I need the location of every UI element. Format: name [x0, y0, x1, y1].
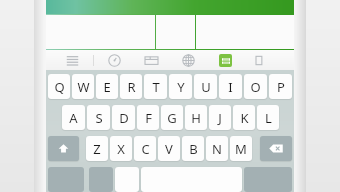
button[interactable]: X	[110, 136, 132, 161]
staticText: O	[250, 78, 261, 96]
button[interactable]: J	[209, 105, 231, 130]
staticText: R	[127, 78, 136, 96]
button[interactable]: Clipboard	[133, 50, 170, 70]
staticText: I	[228, 78, 233, 96]
staticText: S	[95, 109, 103, 127]
staticText: Z	[93, 140, 101, 158]
button[interactable]: S	[87, 105, 110, 130]
staticText: K	[240, 109, 249, 127]
staticText: M	[235, 140, 247, 158]
button[interactable]: Language	[170, 50, 207, 70]
button[interactable]: F	[137, 105, 159, 130]
button[interactable]: K	[233, 105, 255, 130]
button[interactable]: L	[257, 105, 279, 130]
button[interactable]: Keyboard	[207, 50, 244, 70]
button[interactable]: D	[112, 105, 135, 130]
button[interactable]: Z	[86, 136, 108, 161]
staticText: Y	[177, 78, 185, 96]
staticText: L	[265, 109, 272, 127]
staticText: Q	[54, 78, 65, 96]
button[interactable]: Shift	[48, 136, 79, 161]
button[interactable]: V	[158, 136, 180, 161]
staticText: C	[141, 140, 150, 158]
staticText: G	[167, 109, 177, 127]
button[interactable]: O	[244, 74, 267, 99]
staticText: N	[212, 140, 222, 158]
staticText: H	[191, 109, 201, 127]
button[interactable]: A	[62, 105, 85, 130]
button[interactable]: I	[219, 74, 242, 99]
staticText: J	[218, 109, 222, 127]
button[interactable]: Y	[169, 74, 192, 99]
staticText: F	[145, 109, 152, 127]
staticText: U	[201, 78, 211, 96]
staticText: E	[103, 78, 111, 96]
button[interactable]: C	[134, 136, 156, 161]
button[interactable]: Menu	[54, 50, 91, 70]
staticText: A	[69, 109, 78, 127]
button[interactable]: T	[144, 74, 167, 99]
button[interactable]: Q	[48, 74, 70, 99]
button[interactable]: M	[230, 136, 252, 161]
button[interactable]: G	[161, 105, 183, 130]
button[interactable]: W	[72, 74, 94, 99]
button[interactable]: P	[269, 74, 292, 99]
button[interactable]: N	[206, 136, 228, 161]
button[interactable]: More	[244, 50, 281, 70]
button[interactable]: U	[194, 74, 217, 99]
staticText: P	[277, 78, 285, 96]
staticText: W	[77, 78, 90, 96]
button[interactable]: Recent	[96, 50, 133, 70]
staticText: B	[189, 140, 198, 158]
button[interactable]: H	[185, 105, 207, 130]
button[interactable]: R	[120, 74, 142, 99]
staticText: T	[152, 78, 160, 96]
staticText: V	[165, 140, 173, 158]
staticText: D	[119, 109, 129, 127]
button[interactable]: Backspace	[260, 136, 292, 161]
button[interactable]: E	[96, 74, 118, 99]
button[interactable]	[115, 167, 139, 192]
staticText: X	[117, 140, 125, 158]
button[interactable]: B	[182, 136, 204, 161]
